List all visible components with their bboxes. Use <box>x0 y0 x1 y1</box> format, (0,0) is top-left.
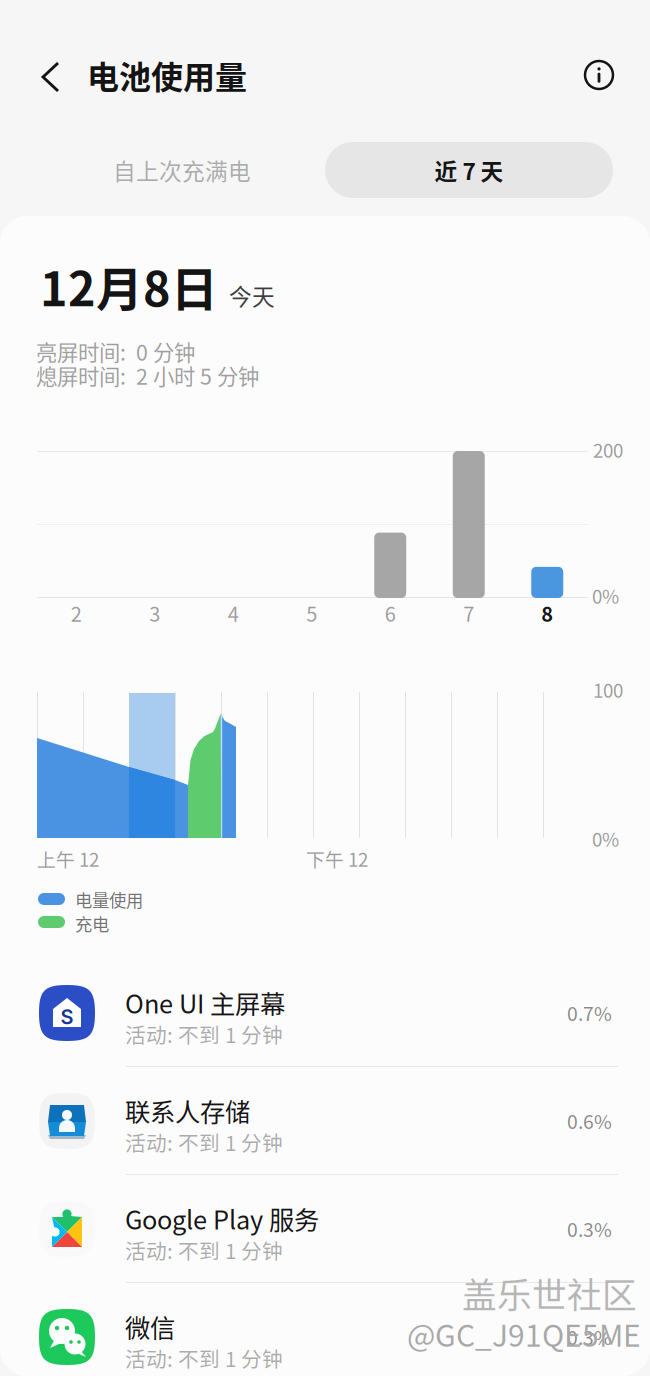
staticText: 联系人存储 <box>125 1092 250 1129</box>
staticText: 熄屏时间: 2 小时 5 分钟 <box>36 360 259 391</box>
staticText: 2 <box>71 598 82 627</box>
button[interactable]: Back <box>25 51 77 103</box>
staticText: 亮屏时间: 0 分钟 <box>36 336 195 367</box>
button[interactable]: 自上次充满电 <box>38 142 326 198</box>
staticText: @GC_J91QE5ME <box>407 1312 641 1355</box>
button[interactable]: 微信 <box>0 1283 650 1376</box>
staticText: 活动: 不到 1 分钟 <box>125 1127 283 1157</box>
staticText: 0.6% <box>567 1106 612 1134</box>
staticText: 活动: 不到 1 分钟 <box>125 1235 283 1265</box>
button[interactable]: Information <box>573 49 625 101</box>
staticText: 0% <box>592 582 619 609</box>
staticText: 活动: 不到 1 分钟 <box>125 1019 283 1049</box>
staticText: 7 <box>463 598 474 627</box>
staticText: 6 <box>385 598 396 627</box>
staticText: 充电 <box>75 911 109 936</box>
button[interactable]: Google Play 服务 <box>0 1175 650 1282</box>
staticText: 4 <box>228 598 239 627</box>
button[interactable]: 联系人存储 <box>0 1067 650 1174</box>
staticText: 5 <box>306 598 317 627</box>
staticText: 0.7% <box>567 998 612 1026</box>
staticText: 上午 12 <box>37 845 99 872</box>
staticText: 近 7 天 <box>434 154 503 186</box>
staticText: 0.3% <box>567 1322 612 1350</box>
staticText: 今天 <box>229 279 275 312</box>
staticText: S <box>60 1005 73 1029</box>
staticText: 0% <box>592 825 619 852</box>
staticText: Google Play 服务 <box>125 1200 319 1237</box>
staticText: 200 <box>593 436 623 463</box>
button[interactable]: S <box>0 959 650 1066</box>
staticText: 3 <box>149 598 160 627</box>
staticText: 下午 12 <box>306 845 368 872</box>
staticText: 电池使用量 <box>87 52 247 98</box>
staticText: 自上次充满电 <box>113 154 251 186</box>
staticText: 100 <box>593 676 623 703</box>
staticText: 活动: 不到 1 分钟 <box>125 1343 283 1373</box>
staticText: 12月8日 <box>40 252 218 320</box>
button[interactable]: 近 7 天 <box>325 142 613 198</box>
staticText: 0.3% <box>567 1214 612 1242</box>
staticText: One UI 主屏幕 <box>125 984 285 1021</box>
staticText: 微信 <box>125 1308 175 1345</box>
staticText: 电量使用 <box>75 887 143 912</box>
staticText: 8 <box>541 598 553 627</box>
staticText: 盖乐世社区 <box>462 1268 637 1318</box>
